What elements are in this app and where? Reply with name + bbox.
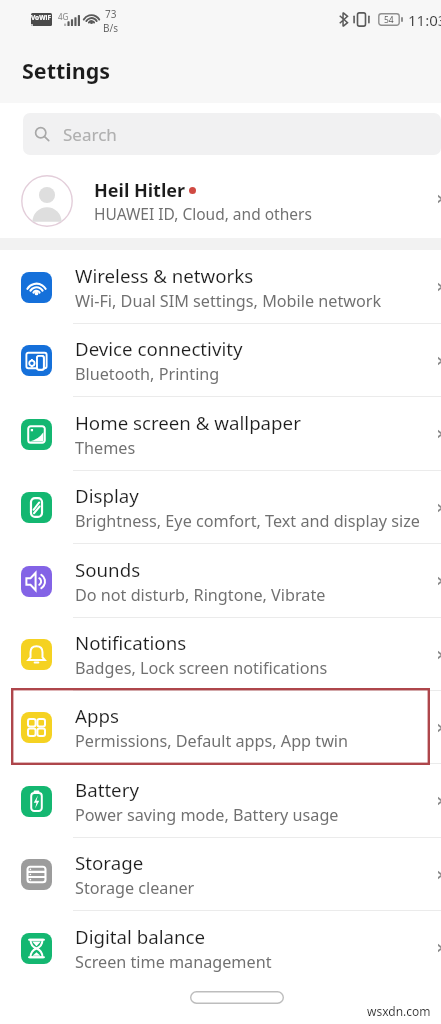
- staticText: Wireless & networks: [75, 263, 254, 288]
- button[interactable]: Device connectivity: [0, 324, 441, 397]
- button[interactable]: Apps: [0, 691, 441, 764]
- button[interactable]: Digital balance: [0, 911, 441, 985]
- staticText: Do not disturb, Ringtone, Vibrate: [75, 584, 326, 606]
- staticText: Notifications: [75, 630, 187, 655]
- staticText: Apps: [75, 703, 119, 728]
- staticText: Heil Hitler: [94, 178, 186, 203]
- staticText: 11:03: [408, 10, 441, 30]
- staticText: Wi-Fi, Dual SIM settings, Mobile network: [75, 290, 382, 312]
- staticText: 73: [105, 7, 117, 21]
- staticText: Device connectivity: [75, 336, 243, 361]
- staticText: HUAWEI ID, Cloud, and others: [94, 203, 312, 224]
- staticText: Badges, Lock screen notifications: [75, 657, 328, 679]
- staticText: Home screen & wallpaper: [75, 410, 301, 435]
- staticText: Screen time management: [75, 951, 272, 973]
- button[interactable]: Storage: [0, 838, 441, 911]
- staticText: Bluetooth, Printing: [75, 363, 220, 385]
- staticText: 54: [384, 14, 394, 26]
- button[interactable]: Sounds: [0, 544, 441, 618]
- button[interactable]: Home screen & wallpaper: [0, 397, 441, 471]
- staticText: Settings: [22, 56, 111, 85]
- button[interactable]: Notifications: [0, 618, 441, 691]
- staticText: Brightness, Eye comfort, Text and displa…: [75, 510, 420, 532]
- staticText: Storage: [75, 850, 144, 875]
- button[interactable]: Heil Hitler: [0, 160, 441, 238]
- staticText: Storage cleaner: [75, 877, 195, 899]
- button[interactable]: Battery: [0, 764, 441, 838]
- staticText: wsxdn.com: [367, 1003, 431, 1019]
- button[interactable]: Search: [23, 113, 441, 155]
- staticText: Display: [75, 483, 139, 508]
- staticText: Search: [63, 123, 117, 146]
- staticText: Sounds: [75, 557, 141, 582]
- staticText: Power saving mode, Battery usage: [75, 804, 339, 826]
- staticText: Permissions, Default apps, App twin: [75, 730, 349, 752]
- staticText: Digital balance: [75, 924, 206, 949]
- staticText: VoWiFi: [31, 13, 52, 26]
- button[interactable]: Wireless & networks: [0, 250, 441, 324]
- staticText: B/s: [103, 21, 119, 35]
- staticText: 4G: [58, 11, 69, 22]
- button[interactable]: Display: [0, 471, 441, 544]
- staticText: Battery: [75, 777, 139, 802]
- staticText: Themes: [75, 437, 136, 459]
